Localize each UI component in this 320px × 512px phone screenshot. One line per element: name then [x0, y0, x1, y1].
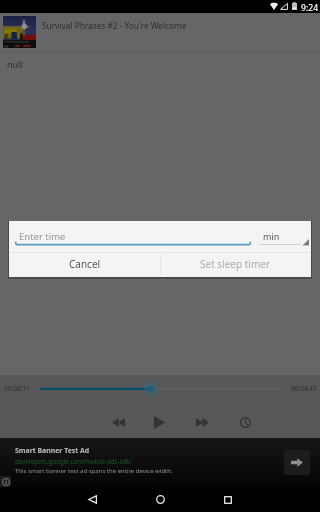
- button[interactable]: Rewind: [98, 407, 139, 437]
- button[interactable]: Unit: [255, 226, 311, 249]
- button[interactable]: Smart Banner Test Ad: [0, 438, 320, 487]
- staticText: null: [7, 58, 23, 70]
- button[interactable]: Cancel: [9, 253, 160, 277]
- staticText: Set sleep timer: [200, 257, 271, 271]
- staticText: 00:02:11: [4, 384, 30, 393]
- button[interactable]: Open ad: [284, 450, 310, 475]
- staticText: Enter time: [19, 230, 66, 243]
- staticText: Cancel: [69, 257, 101, 271]
- button[interactable]: Back: [64, 487, 120, 512]
- staticText: 00:04:47: [291, 384, 317, 393]
- staticText: Smart Banner Test Ad: [15, 446, 90, 455]
- button[interactable]: Fast forward: [182, 407, 223, 437]
- button[interactable]: Recents: [200, 487, 256, 512]
- button[interactable]: Play: [139, 407, 180, 437]
- staticText: developers.google.com/mobile-ads-sdk/: [15, 457, 132, 465]
- staticText: This smart banner test ad spans the enti…: [15, 467, 173, 475]
- staticText: Survival Phrases #2 - You're Welcome: [42, 20, 187, 31]
- button[interactable]: Sleep timer: [225, 407, 266, 437]
- staticText: min: [263, 230, 280, 242]
- button[interactable]: Home: [132, 487, 188, 512]
- button[interactable]: Set sleep timer: [160, 253, 311, 277]
- staticText: 9:24: [301, 2, 319, 14]
